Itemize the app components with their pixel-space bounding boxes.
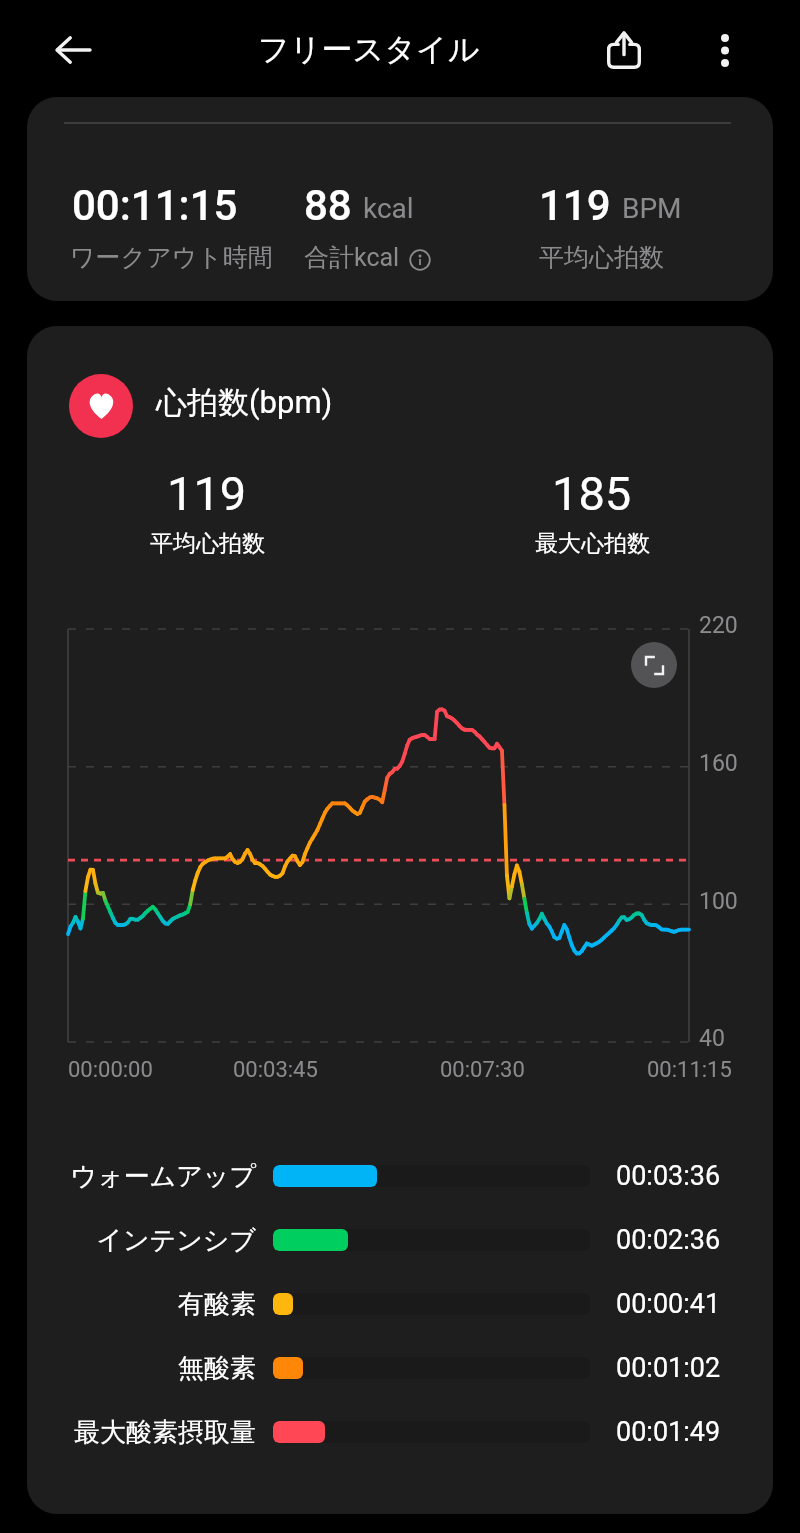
- staticText: 185: [552, 466, 632, 521]
- staticText: 220: [699, 612, 738, 639]
- staticText: 00:07:30: [440, 1057, 525, 1083]
- staticText: 最大心拍数: [535, 529, 650, 558]
- staticText: 00:03:36: [616, 1160, 721, 1192]
- button[interactable]: 無酸素: [27, 1336, 773, 1400]
- button[interactable]: Back: [42, 19, 104, 81]
- staticText: フリースタイル: [258, 30, 480, 69]
- staticText: 合計kcal: [304, 242, 400, 273]
- staticText: 00:02:36: [616, 1224, 721, 1256]
- staticText: kcal: [363, 192, 414, 225]
- staticText: 無酸素: [178, 1352, 256, 1385]
- button[interactable]: 最大酸素摂取量: [27, 1400, 773, 1464]
- staticText: 100: [699, 888, 738, 915]
- button[interactable]: インテンシブ: [27, 1208, 773, 1272]
- staticText: 心拍数(bpm): [156, 383, 333, 422]
- staticText: ワークアウト時間: [70, 242, 273, 273]
- staticText: 00:01:02: [616, 1352, 721, 1384]
- staticText: 00:03:45: [233, 1057, 318, 1083]
- staticText: 有酸素: [178, 1288, 256, 1321]
- staticText: 00:01:49: [616, 1416, 721, 1448]
- staticText: 平均心拍数: [150, 529, 265, 558]
- staticText: 88: [304, 181, 352, 230]
- staticText: BPM: [622, 192, 682, 225]
- staticText: 00:00:41: [616, 1288, 721, 1320]
- button[interactable]: Expand chart: [631, 642, 677, 688]
- staticText: 00:11:15: [647, 1057, 732, 1083]
- staticText: ウォームアップ: [70, 1160, 256, 1193]
- staticText: 119: [539, 181, 611, 230]
- button[interactable]: 有酸素: [27, 1272, 773, 1336]
- staticText: 40: [699, 1025, 725, 1052]
- staticText: 119: [167, 466, 247, 521]
- staticText: 00:11:15: [72, 181, 238, 230]
- staticText: 最大酸素摂取量: [74, 1416, 256, 1449]
- button[interactable]: More options: [692, 17, 758, 83]
- button[interactable]: ウォームアップ: [27, 1144, 773, 1208]
- staticText: 00:00:00: [68, 1057, 153, 1083]
- staticText: 160: [699, 750, 738, 777]
- staticText: 平均心拍数: [539, 242, 664, 273]
- button[interactable]: Share: [591, 15, 657, 81]
- staticText: インテンシブ: [96, 1224, 256, 1257]
